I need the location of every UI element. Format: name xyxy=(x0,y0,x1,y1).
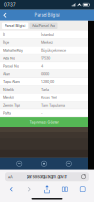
staticText: İl xyxy=(3,32,5,37)
staticText: 07:37 xyxy=(4,2,16,7)
staticText: Tarla xyxy=(41,87,49,92)
button[interactable]: Ada/Parsel Ara xyxy=(29,22,57,29)
staticText: parselsorgu.tkgm.gov.tr xyxy=(26,174,67,179)
staticText: Parsel No xyxy=(3,64,19,68)
button[interactable]: Parsel Bilgisi xyxy=(2,22,28,29)
staticText: 17530 xyxy=(41,56,50,60)
staticText: Pafta xyxy=(3,111,11,115)
staticText: İstanbul xyxy=(41,32,54,37)
staticText: 1.280,00 xyxy=(41,80,54,84)
staticText: Ada/Parsel Ara xyxy=(32,24,55,28)
staticText: İlçe xyxy=(3,40,9,45)
staticText: 0000 xyxy=(41,72,49,76)
staticText: - xyxy=(41,111,43,115)
button[interactable]: Sekmeler xyxy=(76,184,89,195)
button[interactable]: Paylaş xyxy=(40,184,53,195)
staticText: Nitelik xyxy=(3,87,14,92)
staticText: Parsel Bilgisi xyxy=(4,24,25,28)
staticText: Büyükçekmece xyxy=(41,48,66,53)
button[interactable]: Katmanlar xyxy=(14,158,25,169)
staticText: Parsel Bilgisi xyxy=(34,13,59,18)
button[interactable]: Geri xyxy=(0,10,10,21)
staticText: Ada No xyxy=(3,56,15,60)
staticText: ᴀA xyxy=(8,174,13,179)
staticText: Tam Tapulama xyxy=(41,103,65,107)
staticText: Kısas Yeri xyxy=(41,95,57,100)
button[interactable]: Ölçüm xyxy=(63,158,74,169)
staticText: Zemin Tipi xyxy=(3,103,20,107)
button[interactable]: ᴀA xyxy=(5,172,89,181)
staticText: Merkez xyxy=(41,40,53,45)
button[interactable]: Konumum xyxy=(38,158,49,169)
button[interactable]: İleri xyxy=(23,184,36,195)
button[interactable]: Yer İmleri xyxy=(58,184,71,195)
staticText: Mevkii xyxy=(3,95,14,100)
button[interactable]: Taşınmazı Göster xyxy=(0,117,88,127)
staticText: Taşınmazı Göster xyxy=(29,120,58,124)
button[interactable]: Geri xyxy=(5,184,18,195)
staticText: Mahalle/Köy xyxy=(3,48,23,53)
staticText: Alan xyxy=(3,72,10,76)
staticText: Tapu Alanı xyxy=(3,80,20,84)
staticText: 4 xyxy=(41,64,43,68)
